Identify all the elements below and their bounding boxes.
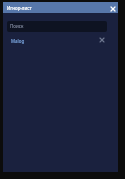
staticText: Malog (11, 38, 25, 44)
button[interactable]: Malog (3, 35, 118, 48)
staticText: Поиск (10, 23, 24, 29)
button[interactable]: Закрыть (109, 5, 117, 13)
button[interactable]: Удалить из игнор-листа (98, 36, 106, 44)
staticText: Игнор-лист (7, 5, 32, 11)
button[interactable]: Поиск (7, 21, 107, 32)
